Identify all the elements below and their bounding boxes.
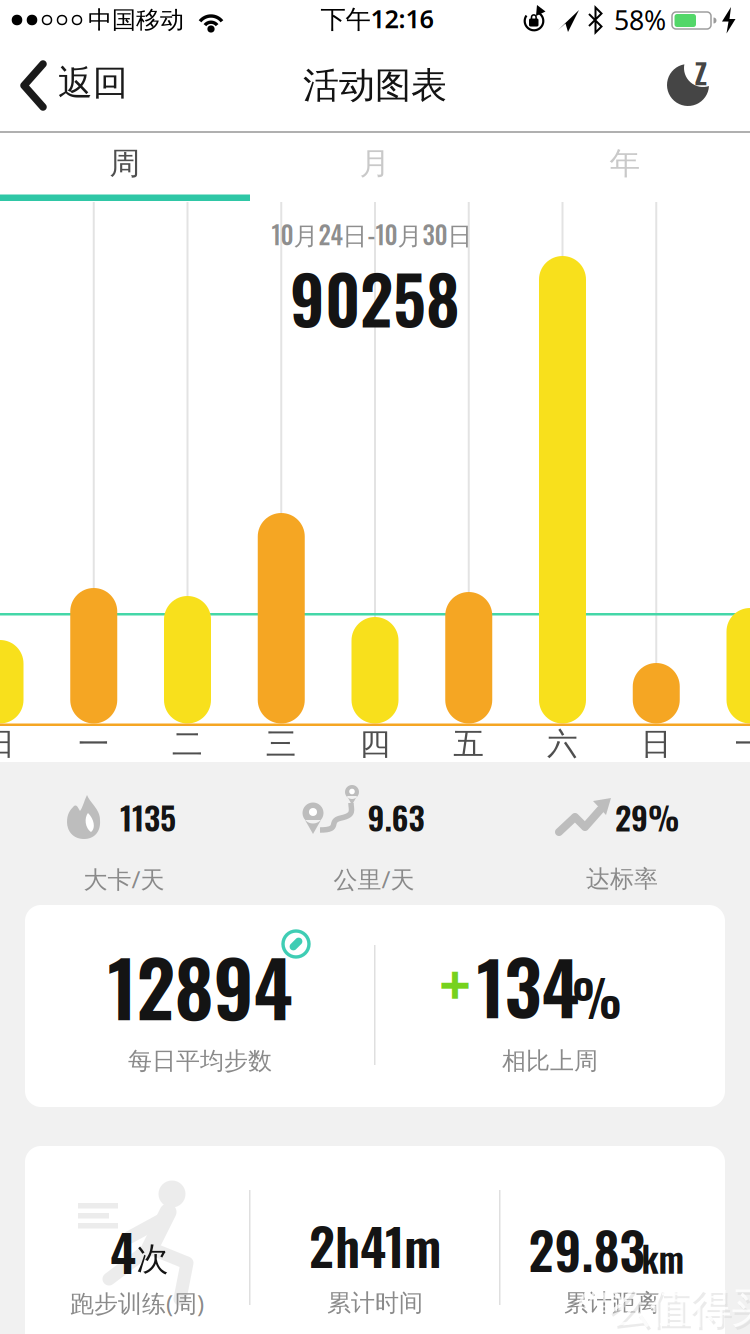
staticText: 4 (110, 1213, 136, 1289)
staticText: 日 (641, 725, 672, 763)
staticText: 跑步训练(周) (70, 1287, 204, 1319)
button[interactable]: 年 (500, 133, 750, 194)
staticText: 公里/天 (333, 863, 414, 895)
staticText: 29.83 (528, 1211, 645, 1287)
staticText: 六 (547, 725, 578, 763)
staticText: 下午12:16 (320, 2, 433, 35)
staticText: % (572, 958, 622, 1034)
staticText: 五 (453, 725, 484, 763)
staticText: 四 (359, 725, 390, 763)
staticText: 1135 (120, 793, 176, 841)
button[interactable]: 夜间模式 (650, 45, 750, 122)
staticText: 58% (614, 2, 666, 38)
staticText: 么值得买 (608, 1283, 750, 1333)
staticText: 年 (609, 145, 640, 182)
staticText: 大卡/天 (83, 863, 164, 895)
staticText: 日 (0, 725, 15, 763)
button[interactable]: 编辑目标 (279, 927, 313, 961)
staticText: 134 (476, 931, 579, 1039)
button[interactable]: 月 (250, 133, 500, 194)
staticText: 12894 (107, 930, 292, 1042)
staticText: 10月24日-10月30日 (271, 216, 472, 252)
staticText: km (641, 1232, 684, 1284)
staticText: 周 (109, 145, 140, 182)
staticText: 一 (78, 725, 109, 763)
staticText: 累计距离 (564, 1288, 660, 1318)
staticText: 三 (266, 725, 297, 763)
button[interactable]: 周 (0, 133, 250, 194)
staticText: 值 (583, 1287, 618, 1329)
button[interactable]: 返回 (0, 45, 170, 122)
staticText: 二 (172, 725, 203, 763)
staticText: 一 (734, 725, 750, 763)
staticText: 活动图表 (303, 63, 447, 108)
staticText: Z (694, 50, 707, 94)
staticText: 次 (136, 1239, 168, 1279)
staticText: 返回 (58, 62, 128, 104)
staticText: 相比上周 (502, 1046, 598, 1076)
staticText: 中国移动 (88, 5, 184, 35)
staticText: 9.63 (367, 793, 424, 841)
staticText: 29% (615, 793, 679, 841)
staticText: 每日平均步数 (128, 1046, 272, 1076)
staticText: 月 (359, 145, 390, 182)
staticText: 么值得买 (610, 1286, 750, 1334)
staticText: 达标率 (586, 864, 658, 894)
staticText: 2h41m (309, 1207, 441, 1283)
staticText: 90258 (290, 250, 460, 346)
staticText: 累计时间 (327, 1288, 423, 1318)
staticText: + (439, 946, 471, 1020)
